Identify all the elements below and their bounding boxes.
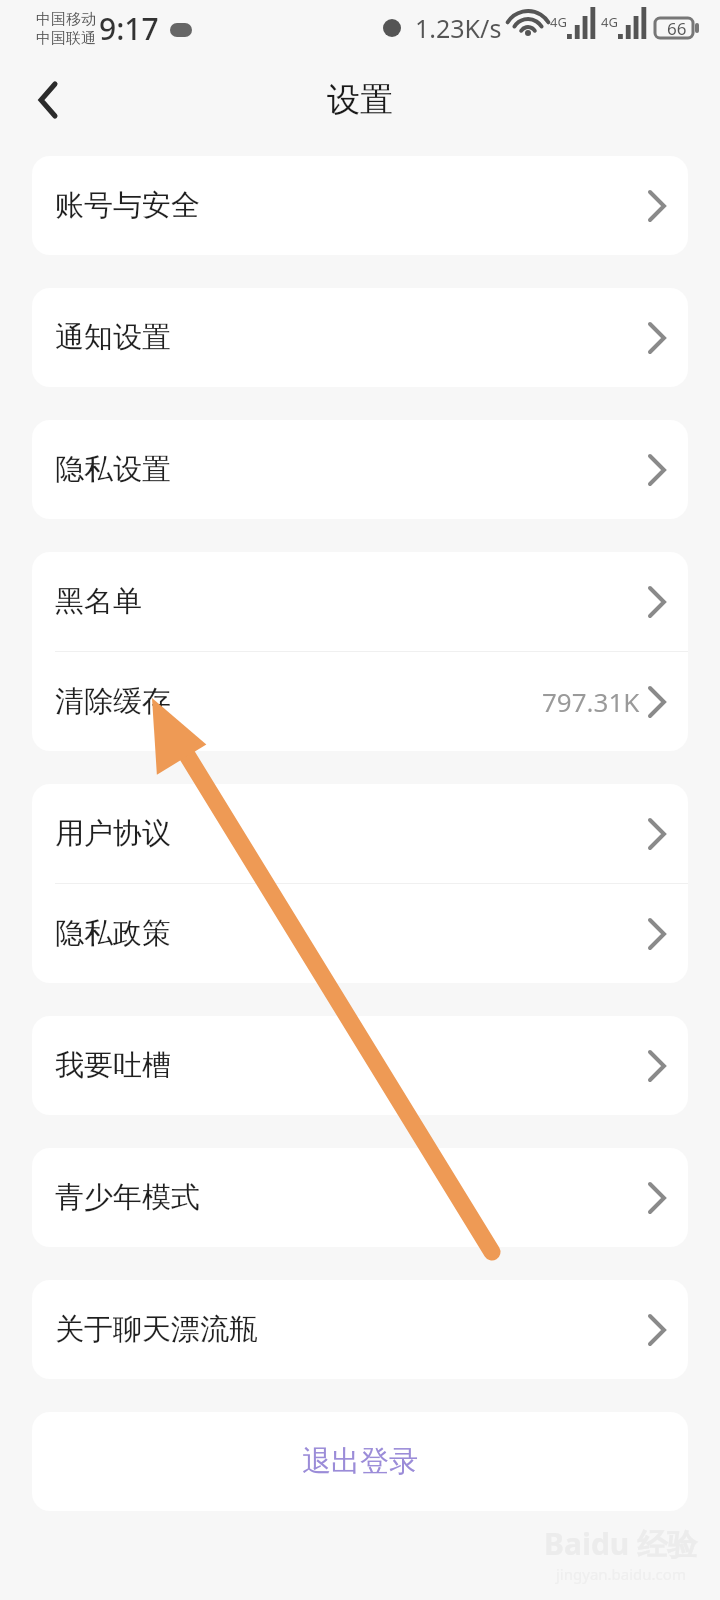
button[interactable]: 黑名单 (32, 552, 688, 651)
button[interactable]: 我要吐槽 (32, 1016, 688, 1115)
staticText: 我要吐槽 (55, 1047, 171, 1084)
button[interactable]: 账号与安全 (32, 156, 688, 255)
button[interactable]: 退出登录 (32, 1412, 688, 1511)
button[interactable]: 隐私设置 (32, 420, 688, 519)
staticText: 4G (601, 13, 618, 31)
staticText: 清除缓存 (55, 683, 171, 720)
staticText: 青少年模式 (55, 1179, 200, 1216)
staticText: 关于聊天漂流瓶 (55, 1311, 258, 1348)
staticText: 隐私政策 (55, 915, 171, 952)
button[interactable]: 清除缓存 (32, 652, 688, 751)
button[interactable]: 通知设置 (32, 288, 688, 387)
staticText: 1.23K/s (415, 11, 502, 45)
staticText: 9:17 (99, 8, 159, 49)
staticText: 4G (550, 13, 567, 31)
staticText: 中国移动 (36, 10, 96, 29)
staticText: 中国联通 (36, 29, 96, 48)
staticText: 隐私设置 (55, 451, 171, 488)
button[interactable]: 用户协议 (32, 784, 688, 883)
staticText: 通知设置 (55, 319, 171, 356)
staticText: 退出登录 (302, 1443, 418, 1480)
staticText: 账号与安全 (55, 187, 200, 224)
button[interactable]: 关于聊天漂流瓶 (32, 1280, 688, 1379)
staticText: 用户协议 (55, 815, 171, 852)
button[interactable]: 青少年模式 (32, 1148, 688, 1247)
staticText: 66 (667, 17, 687, 40)
staticText: Baidu 经验 (544, 1523, 698, 1564)
staticText: 黑名单 (55, 583, 142, 620)
button[interactable]: Back (12, 66, 80, 134)
staticText: 797.31K (542, 684, 640, 719)
button[interactable]: 隐私政策 (32, 884, 688, 983)
staticText: 设置 (327, 79, 393, 121)
